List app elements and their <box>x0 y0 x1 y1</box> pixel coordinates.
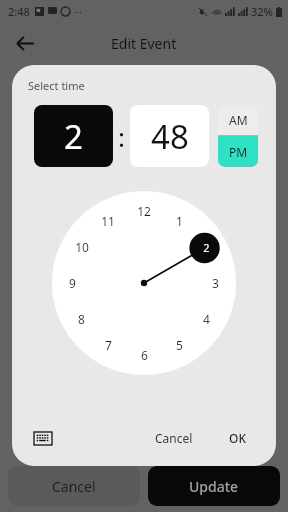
button[interactable]: Update <box>148 466 280 506</box>
staticText: ··· <box>74 5 83 19</box>
staticText: 2:48 <box>8 4 30 19</box>
staticText: 5 <box>176 337 183 353</box>
button[interactable]: 48 <box>130 105 209 167</box>
staticText: 32% <box>251 4 273 19</box>
staticText: Cancel <box>52 477 96 496</box>
button[interactable]: PM <box>218 136 258 167</box>
button[interactable]: OK <box>221 425 254 451</box>
staticText: 2 <box>64 114 83 159</box>
staticText: Edit Event <box>111 34 177 53</box>
button[interactable]: 2 <box>34 105 113 167</box>
staticText: Update <box>189 477 239 496</box>
staticText: Select time <box>28 78 85 93</box>
button[interactable]: Cancel <box>147 425 201 451</box>
button[interactable]: Switch to text input <box>28 424 58 452</box>
staticText: 1 <box>176 213 183 229</box>
staticText: 6 <box>141 347 148 363</box>
staticText: 11 <box>101 213 115 229</box>
staticText: 8 <box>78 311 85 327</box>
button[interactable]: Back <box>8 26 42 60</box>
staticText: 48 <box>151 114 189 159</box>
staticText: OK <box>229 430 246 446</box>
staticText: AM <box>229 112 248 128</box>
staticText: 2 <box>203 240 210 255</box>
staticText: Cancel <box>155 430 193 446</box>
staticText: PM <box>229 144 248 160</box>
staticText: 7 <box>105 337 112 353</box>
staticText: 9 <box>69 275 76 291</box>
staticText: : <box>118 119 125 154</box>
staticText: 10 <box>75 239 89 255</box>
staticText: 4 <box>203 311 210 327</box>
button[interactable]: AM <box>218 105 258 135</box>
button[interactable]: Cancel <box>8 466 140 506</box>
staticText: 3 <box>212 275 219 291</box>
staticText: 12 <box>137 203 151 219</box>
